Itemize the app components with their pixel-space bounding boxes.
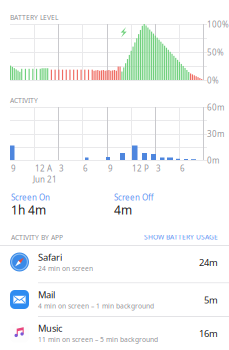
- button[interactable]: Mail: [0, 283, 229, 316]
- staticText: ACTIVITY BY APP: [11, 233, 63, 242]
- staticText: 3: [156, 163, 161, 174]
- staticText: Jun 21: [33, 174, 57, 185]
- staticText: 50%: [207, 47, 224, 58]
- staticText: 9: [108, 163, 113, 174]
- staticText: 6: [83, 163, 88, 174]
- staticText: 12 P: [132, 163, 149, 174]
- button[interactable]: Safari: [0, 246, 229, 279]
- staticText: 4m: [114, 202, 132, 218]
- staticText: 5m: [204, 294, 218, 306]
- staticText: Screen On: [11, 192, 50, 203]
- staticText: 0m: [207, 155, 219, 166]
- staticText: 100%: [207, 19, 229, 30]
- staticText: Safari: [38, 251, 62, 263]
- staticText: SHOW BATTERY USAGE: [144, 233, 218, 241]
- staticText: 11 min on screen – 5 min background: [38, 335, 158, 344]
- staticText: 60m: [207, 102, 224, 113]
- staticText: 16m: [199, 327, 218, 340]
- staticText: 24 min on screen: [38, 264, 93, 273]
- staticText: 6: [180, 163, 185, 174]
- button[interactable]: Music: [0, 317, 229, 350]
- staticText: 9: [11, 163, 16, 174]
- staticText: ACTIVITY: [10, 96, 38, 105]
- staticText: 24m: [199, 256, 218, 269]
- staticText: Mail: [38, 288, 55, 301]
- staticText: BATTERY LEVEL: [10, 13, 58, 22]
- staticText: Music: [38, 322, 62, 334]
- staticText: 4 min on screen – 1 min background: [38, 301, 154, 310]
- staticText: 3: [59, 163, 64, 174]
- staticText: Screen Off: [114, 192, 154, 203]
- staticText: 12 A: [35, 163, 52, 174]
- staticText: 0%: [207, 75, 219, 86]
- staticText: 1h 4m: [11, 202, 46, 218]
- staticText: 30m: [207, 128, 224, 139]
- button[interactable]: SHOW BATTERY USAGE: [141, 231, 221, 243]
